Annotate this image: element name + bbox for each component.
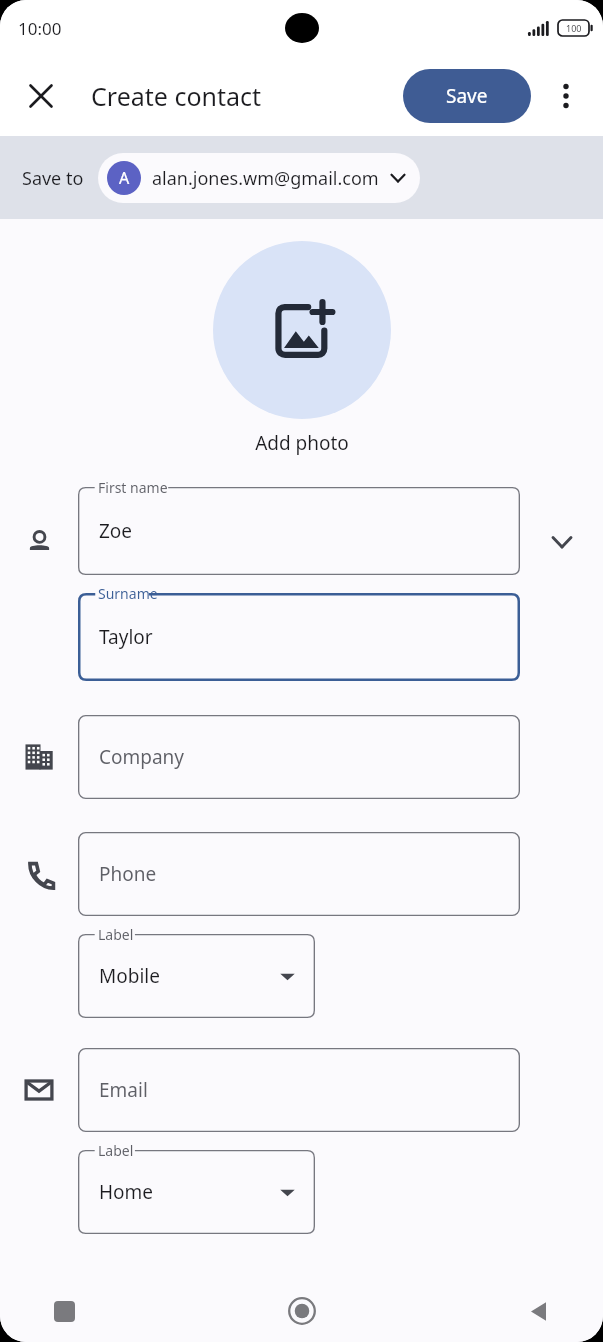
button[interactable]: Close <box>26 81 56 111</box>
staticText: 10:00 <box>18 17 62 40</box>
button[interactable]: First name <box>78 487 520 575</box>
staticText: Surname <box>98 584 158 603</box>
staticText: Create contact <box>91 79 262 113</box>
button[interactable]: Home <box>278 1287 326 1335</box>
staticText: 100 <box>566 22 582 34</box>
staticText: Label <box>98 1141 134 1160</box>
button[interactable]: Back <box>515 1287 563 1335</box>
staticText: Home <box>99 1179 154 1205</box>
button[interactable]: Phone <box>78 832 520 916</box>
staticText: Email <box>99 1077 148 1103</box>
staticText: Save to <box>22 166 84 191</box>
button[interactable]: Recent apps <box>40 1287 88 1335</box>
staticText: Zoe <box>99 518 133 544</box>
staticText: Company <box>99 744 185 770</box>
staticText: alan.jones.wm@gmail.com <box>152 166 379 191</box>
button[interactable]: Save <box>403 69 531 123</box>
staticText: Label <box>98 925 134 944</box>
staticText: Mobile <box>99 963 160 989</box>
staticText: First name <box>98 478 168 497</box>
button[interactable]: Label <box>78 1150 315 1234</box>
staticText: A <box>119 167 130 189</box>
button[interactable]: Add photo <box>213 241 391 419</box>
button[interactable]: Expand name fields <box>547 527 577 557</box>
button[interactable]: Label <box>78 934 315 1018</box>
button[interactable]: More options <box>551 81 581 111</box>
button[interactable]: A <box>98 153 420 203</box>
staticText: Save <box>446 83 488 109</box>
button[interactable]: Company <box>78 715 520 799</box>
staticText: Taylor <box>99 624 153 650</box>
button[interactable]: Email <box>78 1048 520 1132</box>
staticText: Add photo <box>255 430 349 456</box>
button[interactable]: Surname <box>78 593 520 681</box>
staticText: Phone <box>99 861 157 887</box>
